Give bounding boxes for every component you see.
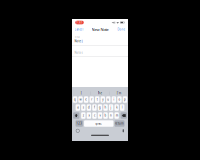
staticText: c — [94, 114, 95, 117]
staticText: Notes — [74, 51, 82, 54]
staticText: u — [107, 98, 109, 101]
button[interactable]: Done — [117, 28, 125, 31]
button[interactable]: k — [114, 104, 119, 111]
button[interactable]: j — [109, 104, 113, 111]
button[interactable]: e — [84, 96, 88, 103]
button[interactable]: q — [73, 96, 77, 103]
button[interactable]: l — [120, 104, 124, 111]
staticText: j — [111, 106, 112, 109]
button[interactable]: y — [101, 96, 105, 103]
staticText: k — [116, 106, 117, 109]
button[interactable]: f — [92, 104, 97, 111]
button[interactable]: space — [84, 120, 113, 127]
button[interactable]: d — [87, 104, 91, 111]
button[interactable]: i — [112, 96, 116, 103]
button[interactable]: z — [81, 112, 86, 119]
staticText: l — [122, 106, 123, 109]
staticText: return — [115, 122, 124, 125]
staticText: e — [85, 98, 87, 101]
button[interactable]: a — [76, 104, 80, 111]
button[interactable]: Emoji keyboard — [76, 129, 79, 132]
button[interactable]: v — [98, 112, 102, 119]
staticText: space — [95, 122, 102, 125]
staticText: q — [74, 98, 76, 101]
staticText: g — [99, 106, 101, 109]
staticText: x — [88, 114, 89, 117]
button[interactable]: n — [109, 112, 113, 119]
staticText: I — [81, 91, 82, 95]
button[interactable]: Delete — [121, 112, 127, 119]
staticText: a — [77, 106, 78, 109]
button[interactable]: o — [117, 96, 122, 103]
staticText: r — [91, 98, 92, 101]
staticText: I'm — [117, 91, 121, 95]
staticText: New Note — [91, 27, 108, 32]
staticText: z — [83, 114, 84, 117]
staticText: y — [102, 98, 103, 101]
staticText: i — [113, 98, 114, 101]
button[interactable]: m — [114, 112, 119, 119]
button[interactable]: Shift — [73, 112, 79, 119]
staticText: TITLE — [74, 35, 79, 38]
staticText: 123 — [76, 122, 82, 125]
staticText: f — [94, 106, 95, 109]
button[interactable]: s — [81, 104, 86, 111]
staticText: d — [88, 106, 90, 109]
staticText: n — [110, 114, 112, 117]
staticText: The — [97, 91, 102, 95]
staticText: 9:41 — [76, 21, 83, 24]
staticText: o — [118, 98, 120, 101]
button[interactable]: w — [78, 96, 83, 103]
button[interactable]: p — [123, 96, 127, 103]
button[interactable]: h — [103, 104, 108, 111]
button[interactable]: g — [98, 104, 102, 111]
staticText: h — [105, 106, 107, 109]
button[interactable]: Cancel — [74, 28, 83, 31]
button[interactable]: b — [103, 112, 108, 119]
staticText: p — [124, 98, 126, 101]
staticText: Note — [74, 39, 81, 43]
staticText: t — [97, 98, 98, 101]
staticText: b — [105, 114, 107, 117]
button[interactable]: c — [92, 112, 97, 119]
button[interactable]: t — [95, 96, 99, 103]
button[interactable]: r — [89, 96, 94, 103]
button[interactable]: return — [115, 120, 124, 127]
button[interactable]: Dictate — [123, 129, 124, 132]
staticText: s — [83, 106, 84, 109]
button[interactable]: u — [106, 96, 110, 103]
staticText: Done — [117, 28, 125, 31]
staticText: m — [116, 114, 118, 117]
button[interactable]: 123 — [75, 120, 83, 127]
staticText: Cancel — [74, 28, 83, 31]
button[interactable]: x — [87, 112, 91, 119]
staticText: w — [80, 98, 82, 101]
